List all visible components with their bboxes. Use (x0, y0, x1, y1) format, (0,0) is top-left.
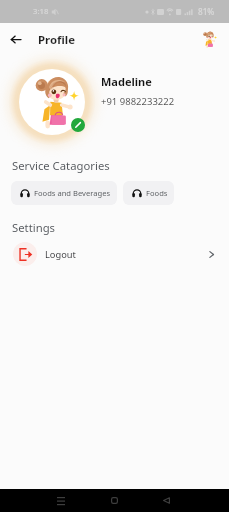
staticText: 81% (198, 6, 215, 17)
button[interactable]: Edit profile (71, 118, 85, 132)
button[interactable]: Back (156, 490, 176, 510)
button[interactable]: Foods and Beverages (11, 181, 117, 205)
staticText: 3:18 (33, 6, 49, 17)
button[interactable]: Foods (123, 181, 174, 205)
button[interactable]: Back (4, 27, 28, 51)
staticText: Foods and Beverages (34, 188, 111, 198)
button[interactable]: Recent apps (51, 490, 71, 510)
staticText: Logout (45, 248, 76, 261)
staticText: Madeline (101, 74, 152, 89)
button[interactable]: Logout (0, 239, 229, 269)
staticText: +91 9882233222 (101, 95, 175, 108)
staticText: Service Catagories (12, 158, 110, 173)
staticText: Profile (38, 32, 76, 48)
button[interactable]: Home (104, 490, 124, 510)
staticText: Foods (146, 188, 168, 198)
staticText: Settings (12, 220, 55, 235)
button[interactable]: Account (197, 28, 219, 50)
